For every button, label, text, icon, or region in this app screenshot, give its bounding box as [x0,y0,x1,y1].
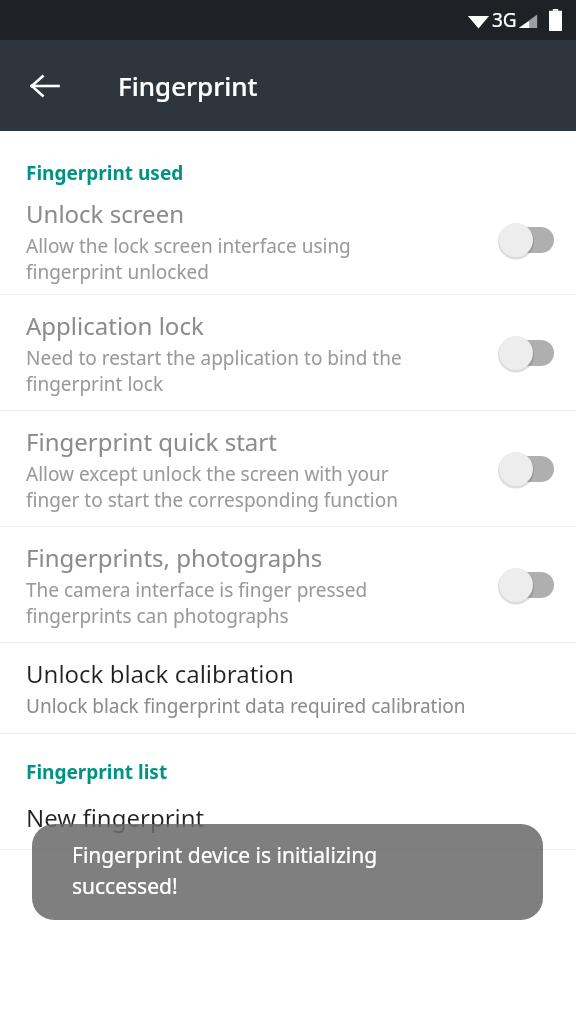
staticText: Fingerprint used [26,160,184,186]
button[interactable]: Fingerprint quick start [0,411,576,526]
button[interactable]: Application lock [0,295,576,410]
staticText: New fingerprint [26,801,205,834]
staticText: Fingerprint device is initializing succe… [72,841,378,900]
staticText: Fingerprint list [26,759,168,785]
button[interactable]: Fingerprints, photographs [0,527,576,642]
button[interactable]: Unlock black calibration [0,643,576,733]
staticText: The camera interface is finger pressed f… [26,577,368,628]
staticText: Fingerprints, photographs [26,541,323,574]
staticText: Fingerprint quick start [26,425,277,458]
staticText: Application lock [26,309,204,342]
staticText: Fingerprint [118,68,258,103]
staticText: Allow the lock screen interface using fi… [26,233,351,284]
staticText: 3G [492,7,517,33]
staticText: Unlock screen [26,197,185,230]
button[interactable]: Unlock screen [0,186,576,294]
staticText: Need to restart the application to bind … [26,345,402,396]
staticText: Unlock black fingerprint data required c… [26,693,466,719]
staticText: Allow except unlock the screen with your… [26,461,398,512]
button[interactable]: Back [16,57,74,115]
staticText: Unlock black calibration [26,657,294,690]
button[interactable]: New fingerprint [0,785,576,849]
